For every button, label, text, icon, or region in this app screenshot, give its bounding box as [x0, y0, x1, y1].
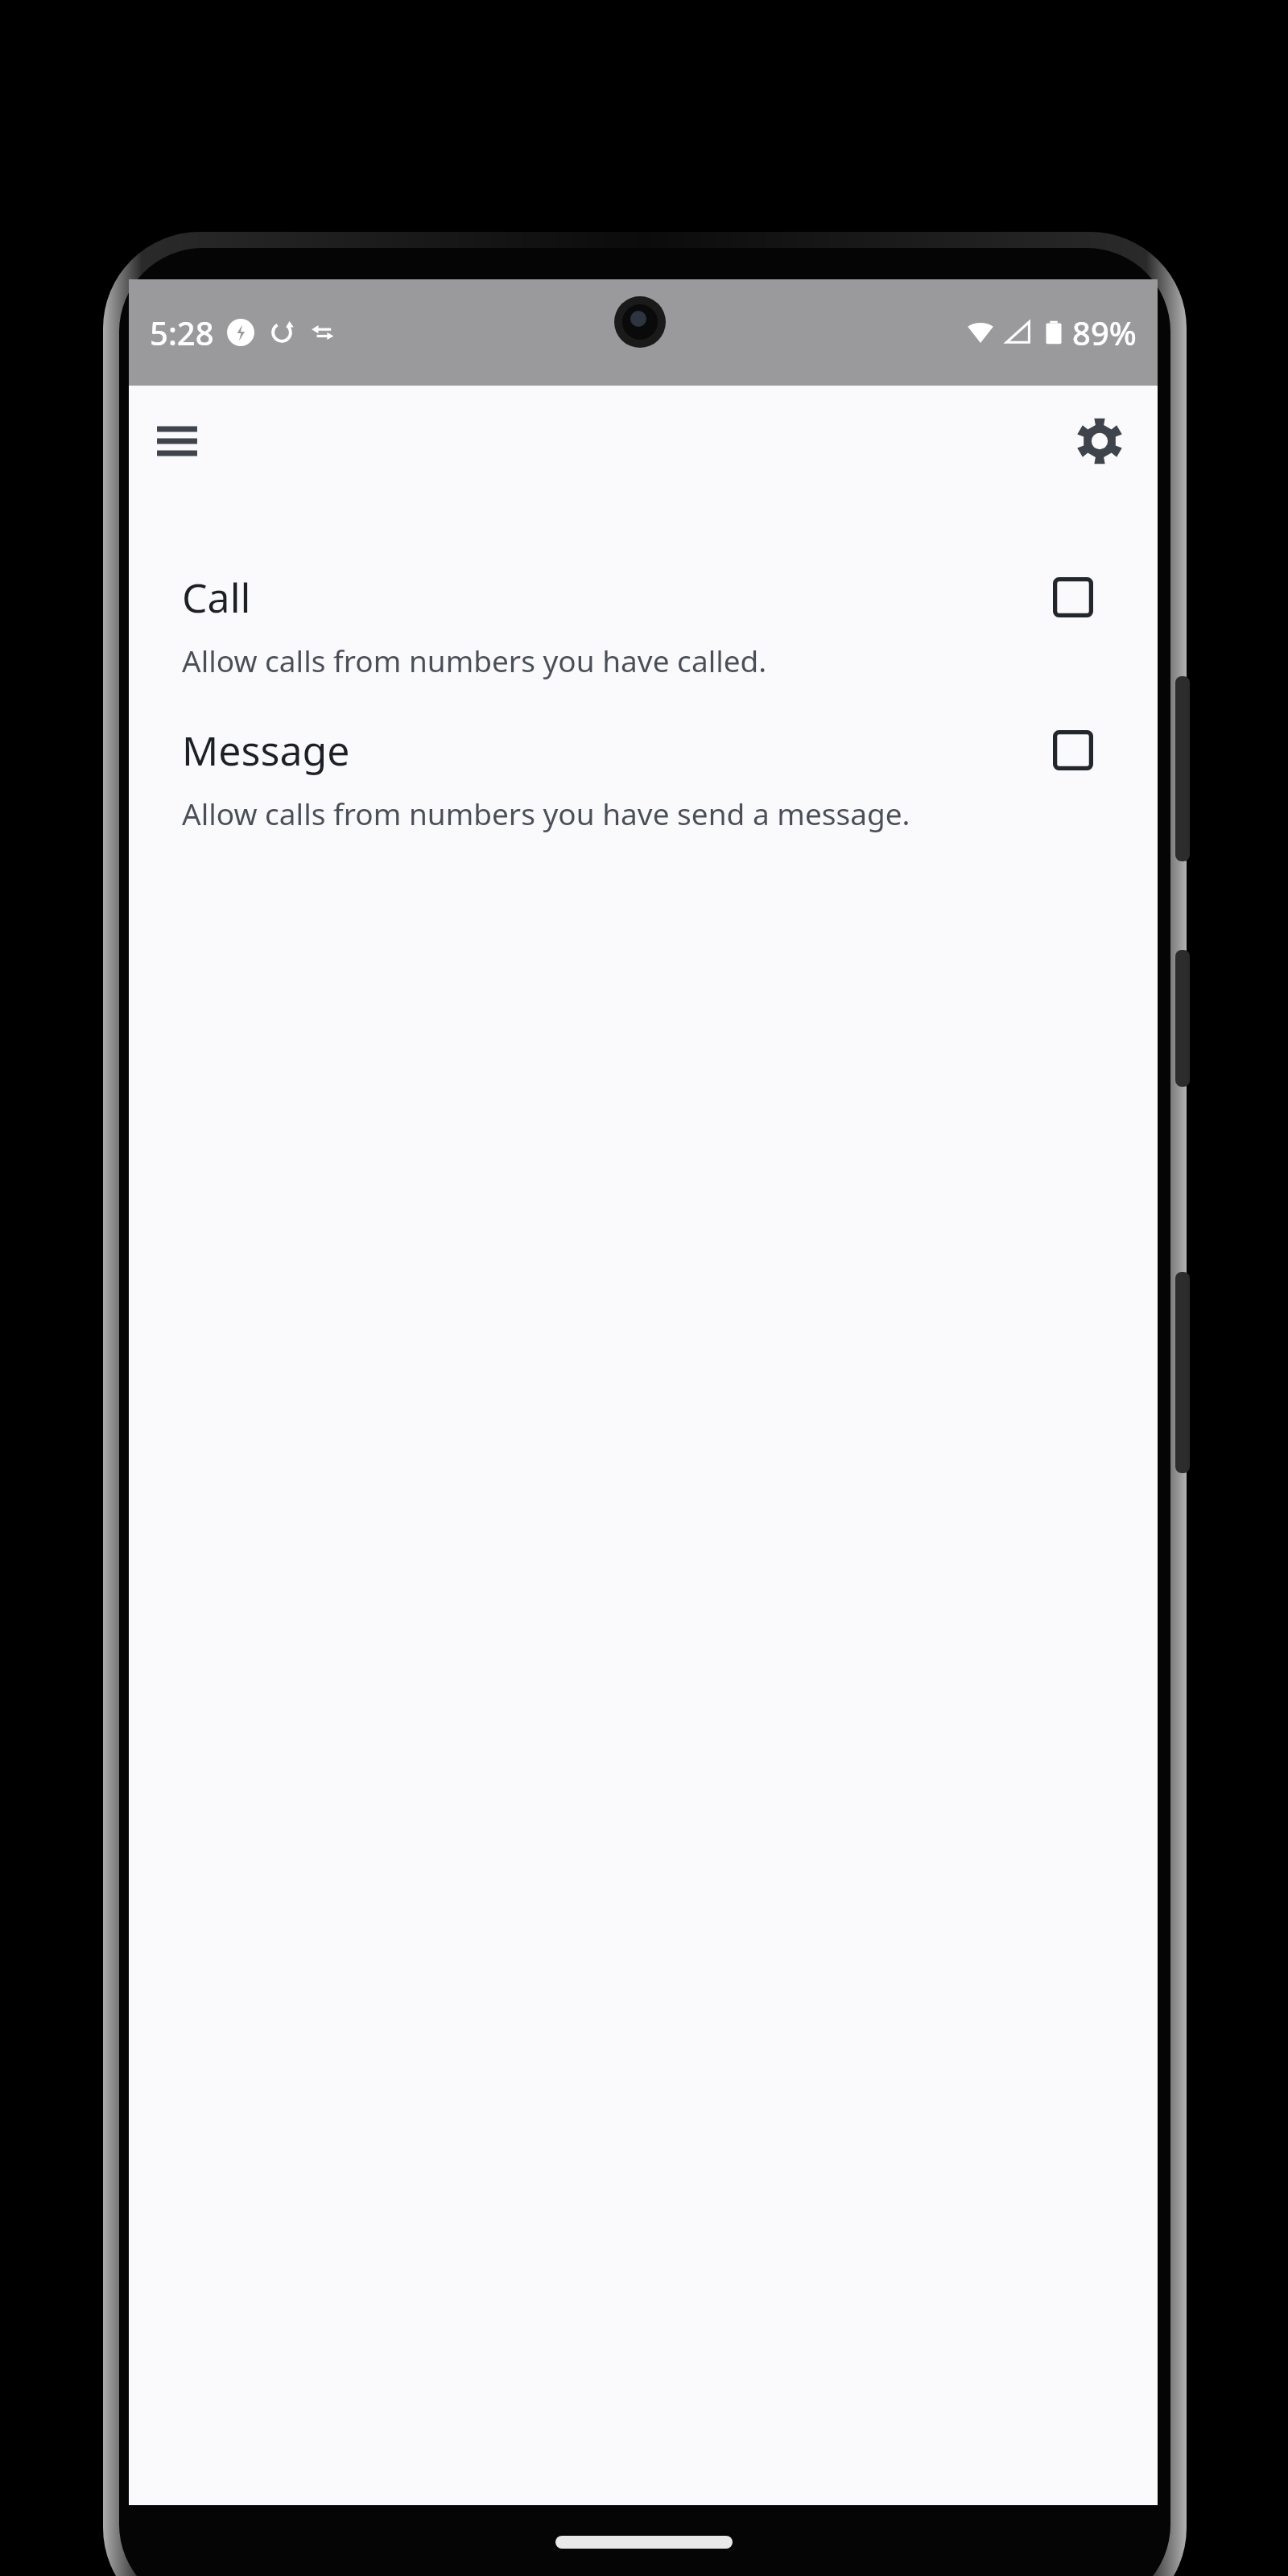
- staticText: Message: [182, 723, 1042, 778]
- button[interactable]: Open navigation menu: [135, 399, 219, 483]
- staticText: Call: [182, 570, 1042, 625]
- button[interactable]: Message checkbox: [1042, 719, 1104, 782]
- staticText: 5:28: [150, 311, 214, 354]
- staticText: 89%: [1072, 311, 1137, 354]
- staticText: Allow calls from numbers you have send a…: [182, 793, 910, 833]
- button[interactable]: Call: [129, 547, 1158, 700]
- button[interactable]: Message: [129, 700, 1158, 852]
- button[interactable]: Call checkbox: [1042, 566, 1104, 629]
- staticText: Allow calls from numbers you have called…: [182, 640, 767, 680]
- button[interactable]: Settings: [1058, 399, 1141, 483]
